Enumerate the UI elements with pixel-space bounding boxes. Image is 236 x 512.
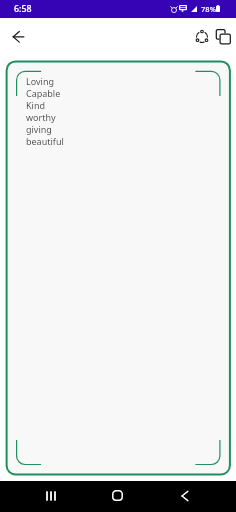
staticText: Kind: [26, 99, 45, 111]
staticText: beautiful: [26, 135, 64, 147]
staticText: 6:58: [14, 3, 32, 15]
button[interactable]: Recent apps: [18, 480, 84, 511]
button[interactable]: Copy: [209, 23, 236, 51]
staticText: worthy: [26, 111, 56, 123]
staticText: giving: [26, 123, 52, 135]
button[interactable]: Back: [4, 23, 32, 51]
staticText: 78%: [201, 4, 216, 14]
staticText: Capable: [26, 87, 61, 99]
button[interactable]: Share: [188, 23, 216, 51]
staticText: Loving: [26, 75, 54, 87]
button[interactable]: Home: [84, 480, 151, 511]
button[interactable]: Back: [151, 480, 218, 511]
